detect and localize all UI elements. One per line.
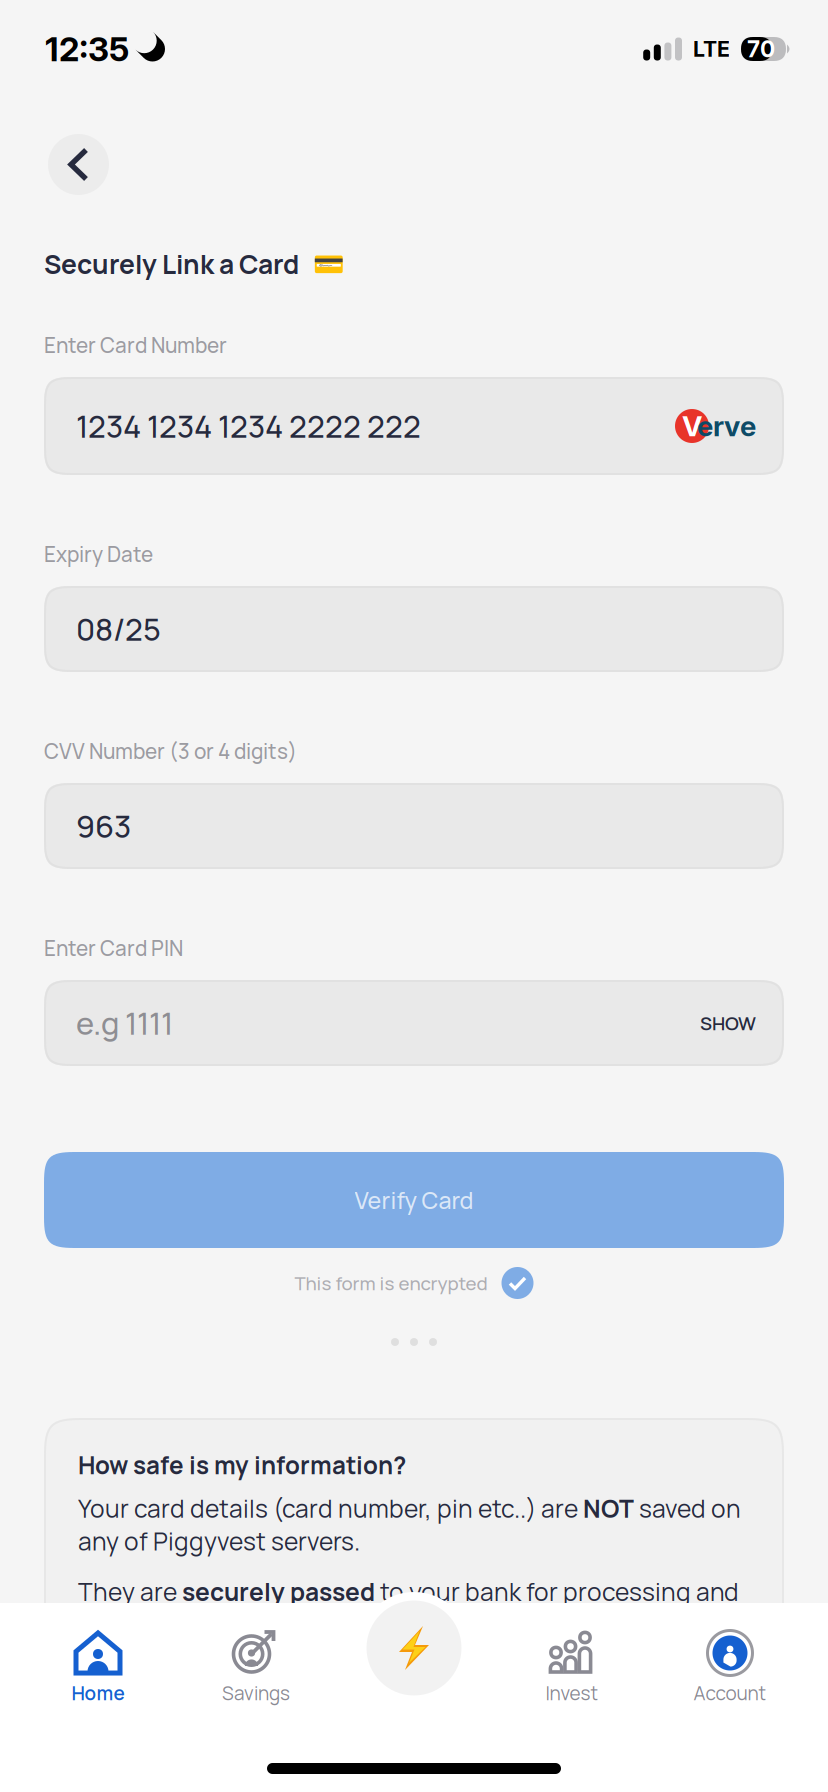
staticText: CVV Number (3 or 4 digits) <box>44 737 297 765</box>
staticText: 963 <box>76 805 131 847</box>
staticText: erve <box>697 409 756 443</box>
staticText: Account <box>693 1680 766 1706</box>
staticText: Savings <box>222 1680 290 1706</box>
staticText: LTE <box>693 36 730 62</box>
staticText: Verify Card <box>354 1184 473 1216</box>
staticText: Securely Link a Card <box>44 246 299 282</box>
staticText: Your card details (card number, pin etc.… <box>78 1492 741 1557</box>
staticText: e.g 1111 <box>76 1002 173 1044</box>
button[interactable]: Back <box>48 134 109 195</box>
staticText: SHOW <box>700 1010 756 1036</box>
staticText: Home <box>71 1680 124 1706</box>
staticText: Invest <box>545 1680 598 1706</box>
staticText: V <box>682 409 702 443</box>
staticText: 08/25 <box>76 608 161 650</box>
staticText: 💳 <box>313 249 345 279</box>
staticText: How safe is my information? <box>78 1448 406 1481</box>
button[interactable]: Verify Card <box>44 1152 784 1248</box>
button[interactable]: Home <box>19 1603 177 1725</box>
staticText: Enter Card Number <box>44 331 227 359</box>
button[interactable]: Savings <box>177 1603 335 1725</box>
staticText: This form is encrypted <box>294 1270 487 1296</box>
staticText: 70 <box>747 35 775 63</box>
staticText: 1234 1234 1234 2222 222 <box>76 405 421 447</box>
button[interactable]: Account <box>651 1603 809 1725</box>
staticText: Expiry Date <box>44 540 153 568</box>
staticText: Enter Card PIN <box>44 934 183 962</box>
staticText: They are securely passed to your bank fo… <box>78 1575 739 1641</box>
staticText: 12:35 <box>45 29 129 69</box>
button[interactable]: SHOW <box>700 1010 756 1036</box>
button[interactable]: Invest <box>493 1603 651 1725</box>
